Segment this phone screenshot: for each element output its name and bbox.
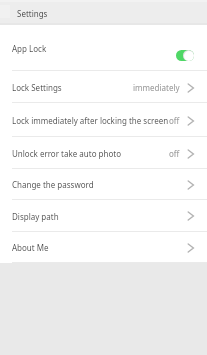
staticText: Display path <box>12 211 59 222</box>
button[interactable]: Lock immediately after locking the scree… <box>0 103 207 137</box>
button[interactable]: Lock Settings <box>0 71 207 103</box>
button[interactable]: App Lock <box>0 25 207 71</box>
button[interactable] <box>176 50 194 61</box>
staticText: immediately <box>133 82 180 93</box>
staticText: Settings <box>17 8 48 19</box>
staticText: App Lock <box>12 43 47 54</box>
button[interactable]: Display path <box>0 200 207 232</box>
staticText: off <box>169 115 180 126</box>
staticText: About Me <box>12 242 49 253</box>
staticText: Change the password <box>12 179 94 190</box>
button[interactable]: About Me <box>0 232 207 263</box>
staticText: off <box>169 148 180 159</box>
button[interactable]: Change the password <box>0 169 207 200</box>
staticText: Unlock error take auto photo <box>12 148 121 159</box>
staticText: Lock Settings <box>12 82 62 93</box>
button[interactable]: Unlock error take auto photo <box>0 137 207 169</box>
staticText: Lock immediately after locking the scree… <box>12 115 169 126</box>
